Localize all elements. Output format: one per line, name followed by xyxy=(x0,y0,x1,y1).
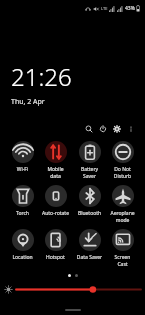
button[interactable]: Mobile data xyxy=(39,141,72,179)
button[interactable]: Battery Saver xyxy=(73,141,106,179)
button[interactable]: Brightness xyxy=(0,282,145,296)
staticText: Screen Cast xyxy=(106,254,139,267)
staticText: Data Saver xyxy=(73,254,106,261)
staticText: Battery Saver xyxy=(73,166,106,179)
staticText: Hotspot xyxy=(39,254,72,261)
button[interactable]: Location xyxy=(6,229,39,261)
button[interactable]: Data Saver xyxy=(73,229,106,261)
button[interactable]: Torch xyxy=(6,185,39,217)
staticText: 43% xyxy=(125,5,135,12)
button[interactable]: More options xyxy=(124,122,137,135)
staticText: Aeroplane mode xyxy=(106,210,139,223)
button[interactable]: Screen Cast xyxy=(106,229,139,267)
staticText: Mobile data xyxy=(39,166,72,179)
button[interactable]: Wi-Fi xyxy=(6,141,39,173)
staticText: Wi-Fi xyxy=(6,166,39,173)
button[interactable]: Bluetooth xyxy=(73,185,106,217)
staticText: LTE xyxy=(101,6,108,11)
staticText: 21:26 xyxy=(11,60,72,93)
button[interactable]: Hotspot xyxy=(39,229,72,261)
button[interactable]: Search xyxy=(82,122,95,135)
button[interactable]: Auto-rotate xyxy=(39,185,72,217)
button[interactable]: Settings xyxy=(110,122,123,135)
staticText: Auto-rotate xyxy=(39,210,72,217)
button[interactable]: Do Not Disturb xyxy=(106,141,139,179)
button[interactable]: Aeroplane mode xyxy=(106,185,139,223)
staticText: Location xyxy=(6,254,39,261)
staticText: Do Not Disturb xyxy=(106,166,139,179)
staticText: Torch xyxy=(6,210,39,217)
staticText: Thu, 2 Apr xyxy=(11,97,45,107)
button[interactable]: Power xyxy=(96,122,109,135)
staticText: Bluetooth xyxy=(73,210,106,217)
